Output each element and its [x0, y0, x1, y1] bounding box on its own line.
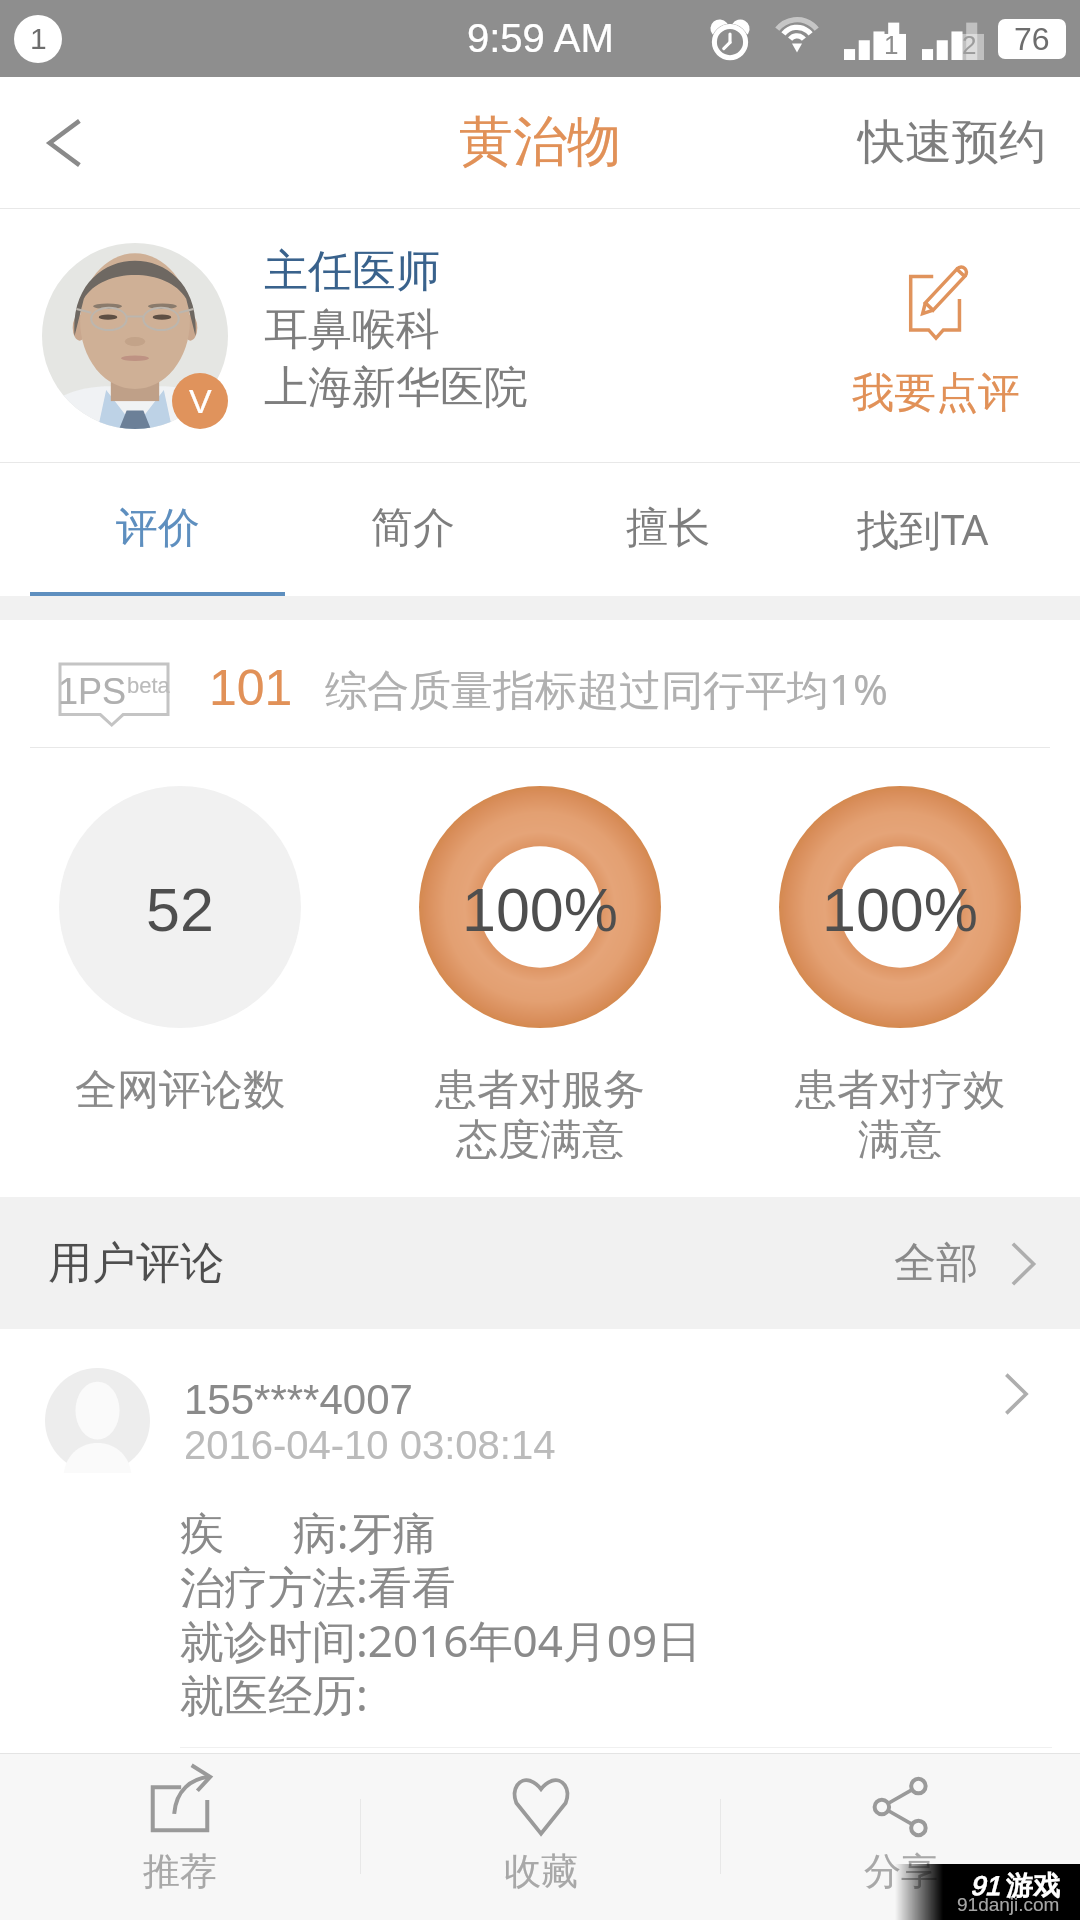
staticText: 简介 — [371, 502, 455, 555]
button[interactable]: 简介 — [285, 463, 540, 596]
staticText: 2 — [962, 30, 977, 59]
button[interactable]: 分享 — [721, 1753, 1080, 1920]
staticText: 155****4007 — [184, 1376, 413, 1423]
button[interactable]: 我要点评 — [852, 265, 1020, 420]
staticText: 找到TA — [857, 500, 989, 557]
staticText: 疾 病:牙痛 — [180, 1502, 437, 1556]
staticText: 游戏 — [1006, 1869, 1060, 1903]
button[interactable]: 100% — [360, 748, 720, 1197]
staticText: 擅长 — [626, 502, 710, 555]
staticText: 就诊时间:2016年04月09日 — [180, 1610, 702, 1664]
staticText: 9:59 AM — [467, 16, 614, 61]
button[interactable]: Back — [0, 78, 130, 208]
staticText: 分享 — [864, 1848, 938, 1895]
staticText: 患者对疗效 满意 — [795, 1064, 1005, 1167]
staticText: 1 — [30, 22, 47, 56]
button[interactable]: 推荐 — [0, 1753, 360, 1920]
staticText: 用户评论 — [48, 1236, 224, 1291]
staticText: 患者对服务 态度满意 — [435, 1064, 645, 1167]
staticText: 2016-04-10 03:08:14 — [184, 1423, 556, 1468]
staticText: beta — [127, 673, 170, 698]
staticText: 收藏 — [504, 1848, 578, 1895]
staticText: 101 — [209, 660, 293, 716]
staticText: 黄治物 — [459, 108, 621, 176]
staticText: 治疗方法:看看 — [180, 1556, 456, 1610]
staticText: 全网评论数 — [75, 1064, 285, 1117]
staticText: 评价 — [116, 502, 200, 555]
staticText: 1PS — [58, 671, 127, 711]
button[interactable]: 155****4007 — [0, 1329, 1080, 1748]
staticText: 上海新华医院 — [264, 360, 528, 415]
button[interactable]: 52 — [0, 748, 360, 1197]
staticText: 全部 — [894, 1237, 978, 1290]
staticText: 52 — [146, 876, 214, 944]
staticText: 1 — [884, 30, 899, 59]
staticText: 耳鼻喉科 — [264, 302, 440, 357]
button[interactable]: 评价 — [30, 463, 285, 596]
button[interactable]: 用户评论 — [0, 1197, 1080, 1329]
staticText: 100% — [822, 876, 979, 944]
staticText: 推荐 — [143, 1848, 217, 1895]
staticText: 就医经历: — [180, 1664, 368, 1718]
staticText: 我要点评 — [852, 367, 1020, 420]
staticText: 91danji.com — [957, 1894, 1060, 1915]
button[interactable]: 100% — [720, 748, 1080, 1197]
staticText: 91 — [970, 1871, 1001, 1901]
staticText: V — [189, 382, 212, 420]
staticText: 快速预约 — [858, 113, 1046, 172]
staticText: 主任医师 — [264, 244, 440, 299]
button[interactable]: V — [0, 209, 1080, 462]
button[interactable]: 收藏 — [361, 1753, 720, 1920]
button[interactable]: 找到TA — [795, 463, 1050, 596]
button[interactable]: 擅长 — [540, 463, 795, 596]
staticText: 76 — [1014, 21, 1050, 57]
staticText: 综合质量指标超过同行平均1% — [325, 660, 888, 717]
staticText: 100% — [462, 876, 619, 944]
button[interactable]: 快速预约 — [858, 113, 1046, 172]
